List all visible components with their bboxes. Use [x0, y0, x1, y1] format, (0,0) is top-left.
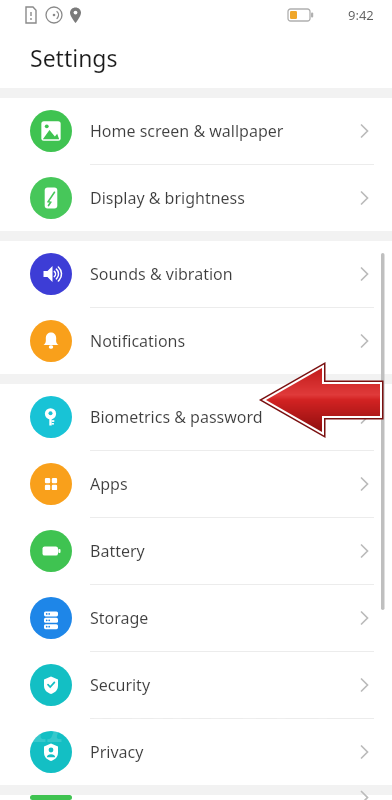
staticText: 9:42	[348, 6, 374, 24]
button[interactable]: Home screen & wallpaper	[0, 98, 392, 164]
staticText: Notifications	[90, 330, 186, 352]
button[interactable]: Battery	[0, 518, 392, 584]
button[interactable]: Digital balance	[0, 795, 392, 800]
staticText: Apps	[90, 473, 128, 495]
button[interactable]: Storage	[0, 585, 392, 651]
button[interactable]: Apps	[0, 451, 392, 517]
staticText: HARDRESET	[4, 686, 341, 757]
staticText: Settings	[30, 42, 118, 73]
button[interactable]: Biometrics & password	[0, 384, 392, 450]
staticText: Display & brightness	[90, 187, 245, 209]
staticText: Security	[90, 674, 151, 696]
button[interactable]: Privacy	[0, 719, 392, 785]
button[interactable]: Display & brightness	[0, 165, 392, 231]
staticText: Biometrics & password	[90, 406, 263, 428]
button[interactable]: Security	[0, 652, 392, 718]
staticText: Privacy	[90, 741, 144, 763]
staticText: Storage	[90, 607, 149, 629]
staticText: Home screen & wallpaper	[90, 120, 284, 142]
other: Pointer arrow highlighting Biometrics & …	[0, 0, 392, 800]
button[interactable]: Sounds & vibration	[0, 241, 392, 307]
button[interactable]: Notifications	[0, 308, 392, 374]
staticText: Sounds & vibration	[90, 263, 233, 285]
staticText: Battery	[90, 540, 145, 562]
